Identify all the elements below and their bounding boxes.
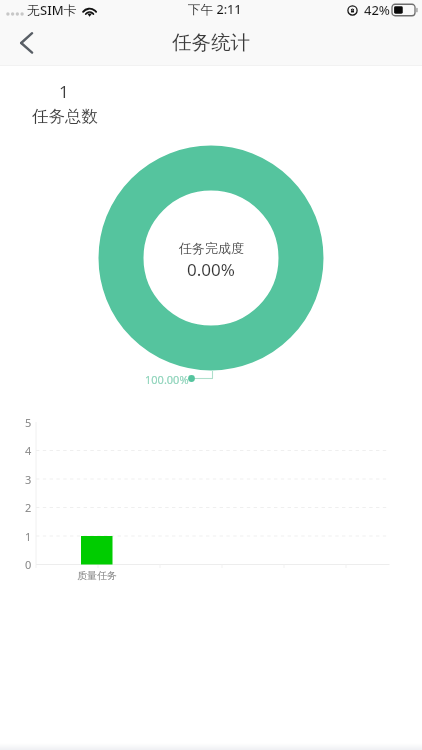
staticText: 100.00% — [145, 372, 189, 387]
staticText: 下午 2:11 — [188, 1, 242, 18]
staticText: 42% — [364, 1, 390, 19]
staticText: 任务总数 — [32, 106, 98, 127]
staticText: 任务统计 — [172, 30, 250, 55]
staticText: 3 — [25, 472, 32, 487]
staticText: 0 — [25, 557, 32, 572]
staticText: 0.00% — [187, 258, 235, 281]
staticText: 1 — [59, 80, 69, 103]
staticText: 1 — [25, 529, 32, 544]
button[interactable]: Back — [5, 22, 48, 65]
staticText: 4 — [25, 443, 32, 458]
staticText: 无SIM卡 — [27, 1, 77, 19]
staticText: 5 — [25, 415, 32, 430]
staticText: 质量任务 — [77, 569, 117, 582]
staticText: 2 — [25, 500, 32, 515]
staticText: 任务完成度 — [179, 240, 244, 256]
